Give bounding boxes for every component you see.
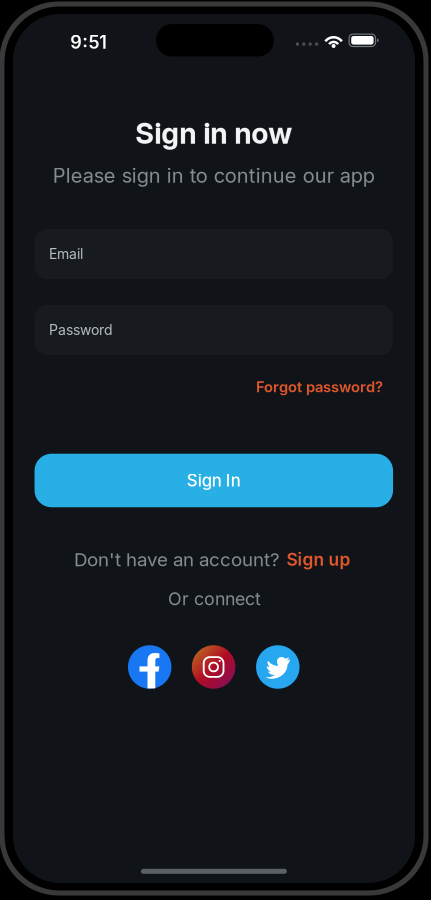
staticText: Sign in now — [135, 116, 292, 151]
staticText: Password — [49, 321, 113, 338]
staticText: Please sign in to continue our app — [53, 163, 375, 188]
button[interactable]: Sign in with Instagram — [192, 645, 236, 689]
button[interactable]: Sign up — [286, 549, 350, 570]
button[interactable]: Forgot password? — [249, 374, 389, 400]
staticText: Email — [49, 245, 83, 262]
staticText: 9:51 — [70, 31, 107, 53]
staticText: Forgot password? — [256, 378, 383, 396]
staticText: Or connect — [168, 588, 261, 610]
button[interactable]: Sign In — [35, 454, 393, 507]
button[interactable]: Sign in with Facebook — [128, 645, 172, 689]
button[interactable]: Sign in with Twitter — [256, 645, 300, 689]
staticText: Sign In — [187, 470, 241, 491]
staticText: Sign up — [286, 549, 350, 570]
staticText: Don't have an account? — [74, 548, 280, 571]
